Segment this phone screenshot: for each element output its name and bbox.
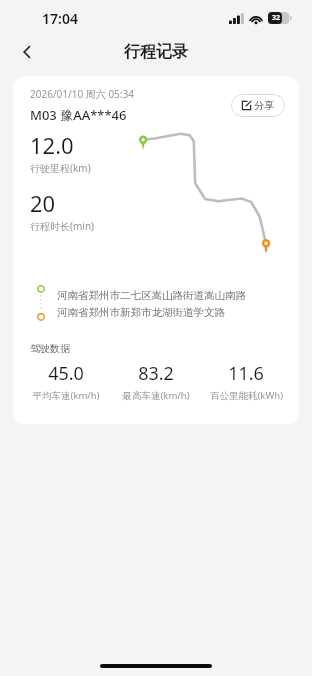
staticText: 最高车速(km/h) (122, 389, 190, 402)
staticText: 12.0 (30, 130, 74, 160)
staticText: 百公里能耗(kWh) (210, 389, 283, 402)
staticText: 河南省郑州市二七区嵩山路街道嵩山南路 (57, 289, 246, 302)
staticText: 行程记录 (124, 42, 188, 62)
staticText: 32 (272, 13, 281, 23)
staticText: 河南省郑州市新郑市龙湖街道学文路 (57, 306, 225, 319)
staticText: 驾驶数据 (30, 342, 70, 355)
staticText: 行驶里程(km) (30, 161, 91, 175)
staticText: 11.6 (228, 361, 264, 386)
staticText: 45.0 (48, 361, 84, 386)
staticText: 平均车速(km/h) (32, 389, 100, 402)
button[interactable]: 分享 (231, 94, 285, 117)
button[interactable]: Back (10, 36, 44, 68)
staticText: 行程时长(min) (30, 219, 95, 233)
staticText: 83.2 (138, 361, 174, 386)
staticText: 17:04 (42, 9, 78, 28)
staticText: M03 豫AA***46 (30, 106, 127, 124)
staticText: 2026/01/10 周六 05:34 (30, 87, 134, 101)
staticText: 20 (30, 188, 56, 218)
staticText: 分享 (254, 99, 274, 112)
